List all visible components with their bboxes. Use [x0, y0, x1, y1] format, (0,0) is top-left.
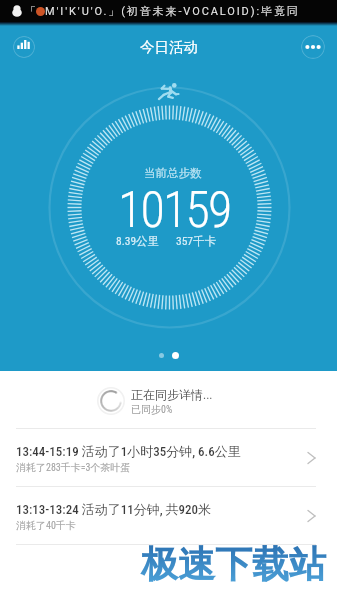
staticText: 8.39公里	[116, 234, 160, 248]
staticText: 当前总步数	[144, 166, 202, 180]
button[interactable]: 13:44-15:19 活动了1小时35分钟, 6.6公里	[0, 429, 337, 486]
other: Open details	[307, 452, 316, 464]
button[interactable]: 13:13-13:24 活动了11分钟, 共920米	[0, 487, 337, 544]
staticText: 消耗了283千卡=3个茶叶蛋	[16, 461, 131, 474]
button[interactable]: More options	[301, 35, 325, 59]
staticText: 「	[25, 4, 36, 18]
staticText: 消耗了40千卡	[16, 519, 76, 532]
staticText: 357千卡	[176, 234, 217, 248]
staticText: M'I'K'U'O.」(初音未来-VOCALOID):毕竟同	[45, 4, 300, 18]
staticText: 10159	[118, 181, 231, 240]
staticText: 极速下载站	[141, 541, 326, 588]
staticText: 13:13-13:24 活动了11分钟, 共920米	[16, 501, 212, 517]
other: Open details	[307, 510, 316, 522]
staticText: 已同步0%	[131, 403, 173, 416]
button[interactable]: Statistics	[13, 36, 35, 58]
staticText: 正在同步详情...	[131, 387, 213, 402]
staticText: 13:44-15:19 活动了1小时35分钟, 6.6公里	[16, 443, 241, 459]
button[interactable]: 正在同步详情...	[0, 371, 337, 428]
staticText: 今日活动	[140, 38, 198, 56]
